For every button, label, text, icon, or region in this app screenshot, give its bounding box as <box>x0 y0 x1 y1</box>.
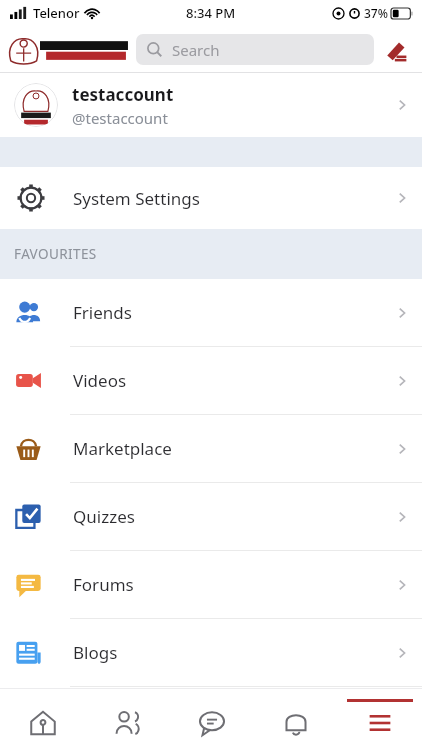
button[interactable]: MuscleBook home <box>6 33 130 67</box>
button[interactable]: Compose post <box>380 34 412 66</box>
button[interactable]: testaccount <box>0 73 422 137</box>
button[interactable]: Notifications <box>254 688 338 750</box>
button[interactable]: Friends <box>0 279 422 346</box>
button[interactable]: Marketplace <box>0 415 422 482</box>
staticText: Blogs <box>73 641 118 664</box>
button[interactable]: Blogs <box>0 619 422 686</box>
staticText: Videos <box>73 369 127 392</box>
button[interactable]: Search <box>136 34 374 65</box>
button[interactable]: Messages <box>170 688 254 750</box>
staticText: Forums <box>73 573 134 596</box>
button[interactable]: Menu <box>338 688 422 750</box>
staticText: Search <box>172 40 220 60</box>
staticText: Friends <box>73 301 132 324</box>
staticText: Marketplace <box>73 437 172 460</box>
button[interactable]: Forums <box>0 551 422 618</box>
staticText: 37% <box>364 5 388 21</box>
staticText: testaccount <box>72 83 174 106</box>
staticText: FAVOURITES <box>14 245 97 263</box>
staticText: Quizzes <box>73 505 135 528</box>
button[interactable]: Videos <box>0 347 422 414</box>
button[interactable]: System Settings <box>0 167 422 229</box>
staticText: 8:34 PM <box>186 4 236 22</box>
staticText: System Settings <box>73 187 200 210</box>
staticText: @testaccount <box>72 108 168 128</box>
button[interactable]: Home <box>0 688 85 750</box>
button[interactable]: Quizzes <box>0 483 422 550</box>
staticText: Telenor <box>33 4 80 22</box>
button[interactable]: Friends <box>85 688 170 750</box>
